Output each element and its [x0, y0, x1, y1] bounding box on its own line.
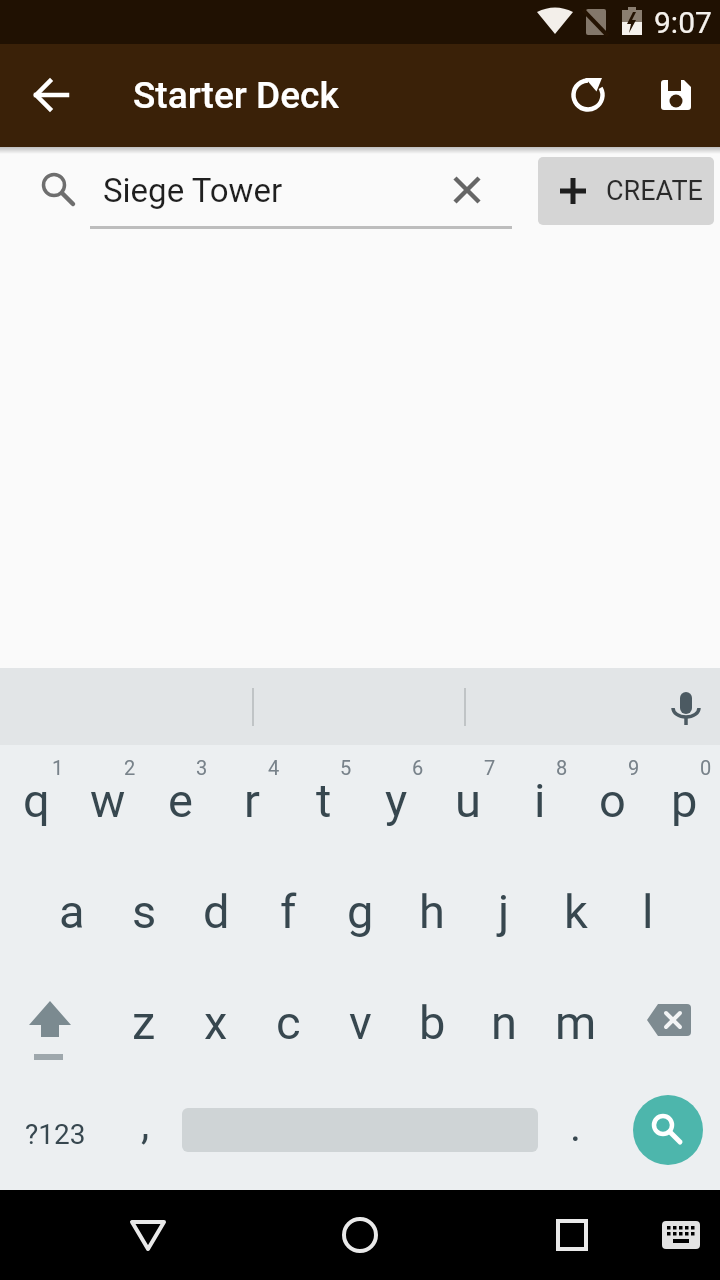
- button[interactable]: [327, 1202, 393, 1268]
- button[interactable]: s: [108, 856, 180, 967]
- button[interactable]: [633, 1095, 703, 1165]
- button[interactable]: c: [252, 967, 324, 1078]
- button[interactable]: [115, 1202, 181, 1268]
- button[interactable]: [434, 157, 500, 223]
- staticText: r: [244, 773, 260, 828]
- staticText: ,: [141, 1100, 150, 1149]
- staticText: e: [168, 773, 193, 828]
- staticText: j: [498, 884, 510, 939]
- button[interactable]: x: [180, 967, 252, 1078]
- staticText: 3: [196, 756, 208, 779]
- button[interactable]: e: [144, 745, 216, 856]
- button[interactable]: [18, 62, 84, 128]
- button[interactable]: w: [72, 745, 144, 856]
- button[interactable]: q: [0, 745, 72, 856]
- button[interactable]: l: [612, 856, 684, 967]
- staticText: v: [349, 995, 372, 1050]
- button[interactable]: z: [108, 967, 180, 1078]
- button[interactable]: h: [396, 856, 468, 967]
- staticText: a: [59, 884, 85, 939]
- staticText: f: [280, 884, 297, 939]
- staticText: ?123: [25, 1118, 86, 1151]
- button[interactable]: [0, 967, 108, 1078]
- staticText: 5: [340, 756, 352, 779]
- button[interactable]: p: [648, 745, 720, 856]
- staticText: s: [132, 884, 157, 939]
- staticText: i: [534, 773, 546, 828]
- button[interactable]: [555, 62, 621, 128]
- staticText: 1: [52, 756, 64, 779]
- button[interactable]: m: [540, 967, 612, 1078]
- button[interactable]: t: [288, 745, 360, 856]
- staticText: q: [23, 773, 50, 828]
- button[interactable]: g: [324, 856, 396, 967]
- staticText: h: [419, 884, 445, 939]
- button[interactable]: y: [360, 745, 432, 856]
- button[interactable]: a: [36, 856, 108, 967]
- staticText: t: [316, 773, 332, 828]
- staticText: 6: [412, 756, 424, 779]
- staticText: o: [599, 773, 626, 828]
- button[interactable]: j: [468, 856, 540, 967]
- button[interactable]: n: [468, 967, 540, 1078]
- staticText: 0: [700, 756, 712, 779]
- staticText: 9: [628, 756, 640, 779]
- button[interactable]: d: [180, 856, 252, 967]
- button[interactable]: u: [432, 745, 504, 856]
- staticText: c: [276, 995, 301, 1050]
- staticText: n: [491, 995, 517, 1050]
- staticText: m: [555, 995, 597, 1050]
- staticText: 2: [124, 756, 136, 779]
- button[interactable]: [612, 967, 720, 1078]
- button[interactable]: CREATE: [538, 157, 714, 225]
- staticText: b: [419, 995, 446, 1050]
- button[interactable]: [539, 1202, 605, 1268]
- staticText: y: [385, 773, 408, 828]
- button[interactable]: .: [546, 1078, 606, 1190]
- button[interactable]: f: [252, 856, 324, 967]
- button[interactable]: o: [576, 745, 648, 856]
- staticText: .: [570, 1102, 582, 1151]
- staticText: z: [132, 995, 156, 1050]
- staticText: p: [671, 773, 698, 828]
- button[interactable]: r: [216, 745, 288, 856]
- staticText: g: [347, 884, 374, 939]
- staticText: l: [642, 884, 654, 939]
- staticText: w: [90, 773, 126, 828]
- staticText: CREATE: [606, 175, 703, 207]
- button[interactable]: k: [540, 856, 612, 967]
- staticText: u: [455, 773, 481, 828]
- staticText: x: [204, 995, 228, 1050]
- staticText: k: [564, 884, 588, 939]
- button[interactable]: [643, 62, 709, 128]
- button[interactable]: i: [504, 745, 576, 856]
- staticText: Starter Deck: [133, 74, 339, 117]
- button[interactable]: ?123: [0, 1078, 110, 1190]
- button[interactable]: [653, 676, 719, 742]
- button[interactable]: v: [324, 967, 396, 1078]
- staticText: 9:07: [654, 5, 712, 40]
- button[interactable]: ,: [110, 1078, 180, 1190]
- staticText: 7: [484, 756, 496, 779]
- staticText: d: [203, 884, 230, 939]
- button[interactable]: [649, 1203, 713, 1267]
- staticText: 8: [556, 756, 568, 779]
- staticText: 4: [268, 756, 280, 779]
- button[interactable]: b: [396, 967, 468, 1078]
- staticText: Siege Tower: [103, 171, 283, 210]
